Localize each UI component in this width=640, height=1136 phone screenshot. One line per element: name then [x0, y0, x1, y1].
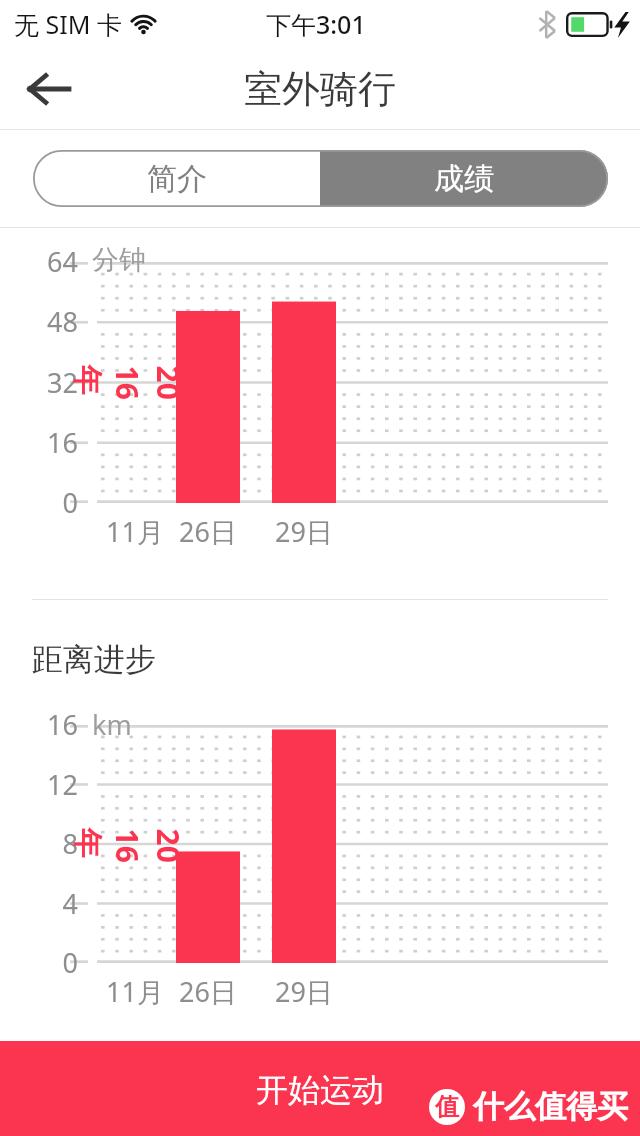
staticText: 11月: [101, 973, 169, 1010]
staticText: 64: [0, 243, 78, 280]
staticText: 简介: [147, 160, 207, 198]
staticText: 16: [0, 424, 78, 461]
staticText: 2016年: [67, 828, 188, 868]
staticText: 48: [0, 303, 78, 340]
staticText: 值: [435, 1092, 459, 1122]
staticText: 12: [0, 766, 78, 803]
staticText: 29日: [270, 973, 338, 1010]
staticText: 32: [0, 364, 78, 401]
staticText: 下午3:01: [266, 7, 366, 41]
staticText: 开始运动: [256, 1070, 384, 1110]
staticText: km: [92, 706, 132, 743]
staticText: 26日: [174, 513, 242, 550]
button[interactable]: Back: [20, 60, 78, 118]
staticText: 26日: [174, 973, 242, 1010]
button[interactable]: 成绩: [320, 150, 608, 207]
staticText: 2016年: [67, 365, 188, 405]
staticText: 距离进步: [32, 640, 156, 679]
staticText: 什么值得买: [473, 1087, 628, 1126]
staticText: 8: [0, 825, 78, 862]
staticText: 0: [0, 484, 78, 521]
button[interactable]: 开始运动: [0, 1041, 640, 1136]
staticText: 0: [0, 944, 78, 981]
staticText: 4: [0, 885, 78, 922]
staticText: 室外骑行: [244, 65, 396, 113]
staticText: 成绩: [434, 160, 494, 198]
staticText: 16: [0, 706, 78, 743]
staticText: 11月: [101, 513, 169, 550]
button[interactable]: 简介: [33, 150, 320, 207]
staticText: 分钟: [92, 243, 146, 277]
staticText: 29日: [270, 513, 338, 550]
staticText: 无 SIM 卡: [14, 7, 122, 41]
